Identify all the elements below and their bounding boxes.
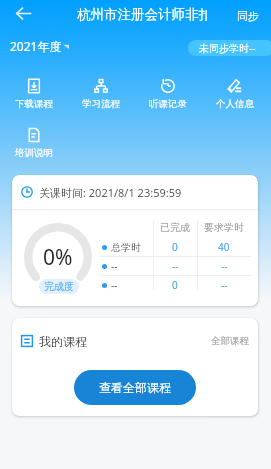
staticText: -- [111,259,118,273]
button[interactable]: 同步 [237,2,259,29]
button[interactable]: 查看全部课程 [74,370,196,405]
staticText: 完成度 [44,280,74,293]
staticText: 个人信息 [216,98,254,110]
button[interactable]: Back [0,0,46,27]
staticText: 杭州市注册会计师非扣 [77,6,207,23]
button[interactable]: 听课记录 [134,79,201,110]
button[interactable]: 个人信息 [201,79,268,110]
staticText: -- [221,259,228,273]
staticText: 2021年度 [10,38,62,54]
staticText: 0 [172,278,178,292]
staticText: -- [221,278,228,292]
staticText: -- [172,259,179,273]
staticText: 培训说明 [15,147,53,159]
staticText: 40 [218,240,230,254]
staticText: 未同步学时-- [199,41,256,55]
staticText: 查看全部课程 [99,380,171,395]
staticText: 0 [172,240,178,254]
staticText: 听课记录 [149,98,187,110]
staticText: 同步 [237,9,259,23]
button[interactable]: 全部课程 [211,335,249,347]
button[interactable]: 培训说明 [0,128,67,159]
button[interactable]: 2021年度 [10,38,69,54]
staticText: 学习流程 [82,98,120,110]
staticText: 已完成 [160,221,190,234]
staticText: 关课时间: 2021/8/1 23:59:59 [39,185,182,200]
staticText: 下载课程 [15,98,53,110]
staticText: 要求学时 [204,221,244,234]
staticText: -- [111,278,118,292]
button[interactable]: 学习流程 [67,79,134,110]
staticText: 我的课程 [39,334,87,349]
staticText: 总学时 [111,241,141,254]
button[interactable]: 下载课程 [0,79,67,110]
staticText: 全部课程 [211,335,249,347]
button[interactable]: 未同步学时-- [188,40,271,56]
staticText: 0% [43,243,73,272]
